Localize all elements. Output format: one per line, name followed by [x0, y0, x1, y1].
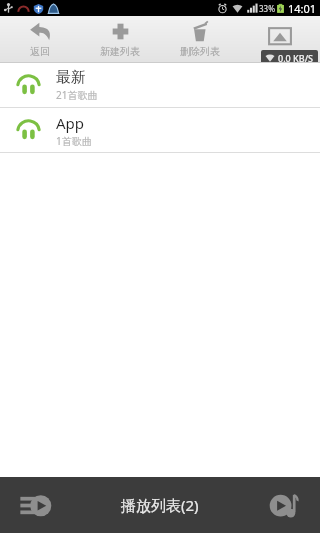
- staticText: App: [56, 113, 85, 133]
- staticText: 1首歌曲: [56, 134, 92, 148]
- staticText: 返回: [30, 45, 50, 58]
- button[interactable]: 最新: [0, 63, 320, 107]
- staticText: 播放列表(2): [121, 495, 199, 515]
- button[interactable]: 新建列表: [80, 16, 160, 63]
- staticText: 14:01: [288, 1, 317, 16]
- button[interactable]: App: [0, 108, 320, 152]
- staticText: 删除列表: [180, 45, 220, 58]
- button[interactable]: 播放列表(2): [72, 477, 248, 533]
- button[interactable]: Playlist queue: [0, 477, 72, 533]
- staticText: 21首歌曲: [56, 88, 98, 102]
- button[interactable]: Now playing: [248, 477, 320, 533]
- staticText: 最新: [56, 68, 86, 87]
- button[interactable]: Cast: [240, 16, 320, 63]
- staticText: 0.0 KB/S: [278, 52, 314, 64]
- button[interactable]: 返回: [0, 16, 80, 63]
- staticText: 33%: [259, 3, 275, 14]
- staticText: 新建列表: [100, 45, 140, 58]
- button[interactable]: 删除列表: [160, 16, 240, 63]
